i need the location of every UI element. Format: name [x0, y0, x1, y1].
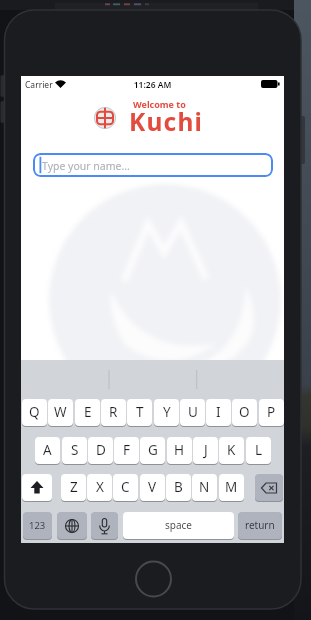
- staticText: 11:26 AM: [127, 79, 178, 90]
- staticText: O: [239, 403, 250, 421]
- staticText: M: [225, 478, 238, 496]
- staticText: H: [174, 441, 185, 459]
- button[interactable]: A: [35, 437, 60, 465]
- button[interactable]: S: [62, 437, 87, 465]
- button[interactable]: J: [193, 437, 218, 465]
- staticText: S: [71, 441, 79, 459]
- button[interactable]: space: [123, 512, 234, 540]
- staticText: X: [96, 478, 104, 496]
- button[interactable]: L: [246, 437, 271, 465]
- staticText: P: [267, 403, 276, 421]
- button[interactable]: E: [75, 399, 100, 427]
- staticText: W: [54, 403, 67, 421]
- staticText: R: [109, 403, 118, 421]
- button[interactable]: W: [48, 399, 73, 427]
- button[interactable]: R: [101, 399, 126, 427]
- button[interactable]: K: [219, 437, 244, 465]
- staticText: J: [204, 441, 208, 459]
- staticText: K: [227, 441, 236, 459]
- button[interactable]: C: [113, 474, 138, 502]
- button[interactable]: 123: [23, 512, 52, 540]
- staticText: L: [255, 441, 263, 459]
- staticText: G: [148, 441, 158, 459]
- button[interactable]: Type your name...: [33, 153, 273, 177]
- button[interactable]: I: [206, 399, 231, 427]
- staticText: F: [123, 441, 131, 459]
- staticText: Kuchi: [129, 105, 204, 138]
- button[interactable]: F: [114, 437, 139, 465]
- button[interactable]: T: [127, 399, 152, 427]
- staticText: D: [96, 441, 106, 459]
- staticText: I: [216, 403, 221, 421]
- staticText: return: [245, 518, 275, 532]
- button[interactable]: M: [219, 474, 244, 502]
- button[interactable]: [136, 561, 172, 597]
- staticText: C: [121, 478, 130, 496]
- staticText: Q: [29, 403, 40, 421]
- staticText: Carrier: [25, 79, 53, 91]
- staticText: Y: [163, 403, 171, 421]
- button[interactable]: N: [192, 474, 217, 502]
- button[interactable]: [255, 474, 283, 502]
- button[interactable]: Y: [154, 399, 179, 427]
- staticText: Welcome to: [133, 98, 186, 110]
- button[interactable]: [22, 474, 52, 502]
- staticText: Type your name...: [42, 159, 130, 173]
- button[interactable]: U: [180, 399, 205, 427]
- staticText: B: [174, 478, 183, 496]
- staticText: E: [84, 403, 92, 421]
- button[interactable]: P: [259, 399, 284, 427]
- staticText: T: [136, 403, 144, 421]
- button[interactable]: X: [87, 474, 112, 502]
- staticText: 123: [29, 519, 46, 532]
- staticText: N: [199, 478, 210, 496]
- button[interactable]: [57, 512, 87, 540]
- button[interactable]: H: [167, 437, 192, 465]
- button[interactable]: G: [140, 437, 165, 465]
- staticText: Z: [70, 478, 78, 496]
- button[interactable]: B: [166, 474, 191, 502]
- staticText: space: [165, 518, 192, 532]
- staticText: V: [148, 478, 157, 496]
- staticText: A: [43, 441, 52, 459]
- button[interactable]: return: [238, 512, 282, 540]
- button[interactable]: O: [232, 399, 257, 427]
- button[interactable]: Q: [22, 399, 47, 427]
- button[interactable]: Z: [61, 474, 86, 502]
- staticText: U: [188, 403, 198, 421]
- button[interactable]: V: [140, 474, 165, 502]
- button[interactable]: [91, 512, 118, 540]
- button[interactable]: D: [88, 437, 113, 465]
